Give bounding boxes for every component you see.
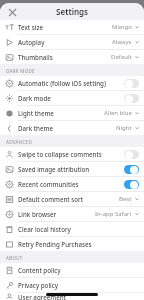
button[interactable]: Dark theme bbox=[0, 121, 144, 135]
staticText: Alien blue bbox=[104, 109, 132, 117]
button[interactable]: Dark mode bbox=[0, 91, 144, 105]
button[interactable]: Privacy policy bbox=[0, 278, 144, 292]
staticText: Mango bbox=[112, 23, 132, 31]
staticText: Swipe to collapse comments bbox=[18, 150, 124, 158]
button[interactable]: Recent communities bbox=[0, 177, 144, 191]
button[interactable]: Light theme bbox=[0, 106, 144, 120]
button[interactable]: Automatic (follow iOS setting) bbox=[0, 76, 144, 90]
staticText: Clear local history bbox=[18, 225, 139, 233]
staticText: DARK MODE bbox=[6, 68, 35, 74]
staticText: Always bbox=[112, 38, 132, 46]
button[interactable]: Swipe to collapse comments bbox=[0, 147, 144, 161]
staticText: ADVANCED bbox=[6, 139, 32, 145]
staticText: Link browser bbox=[18, 210, 95, 218]
button[interactable]: User agreement bbox=[0, 293, 144, 300]
staticText: Saved image attribution bbox=[18, 165, 124, 173]
button[interactable]: Retry Pending Purchases bbox=[0, 237, 144, 251]
button[interactable]: Text size bbox=[0, 20, 144, 34]
button[interactable]: Link browser bbox=[0, 207, 144, 221]
staticText: Best bbox=[119, 195, 132, 203]
button[interactable]: Saved image attribution bbox=[0, 162, 144, 176]
button[interactable]: Close bbox=[5, 5, 19, 19]
staticText: Autoplay bbox=[18, 38, 112, 46]
staticText: Content policy bbox=[18, 266, 139, 274]
staticText: Thumbnails bbox=[18, 53, 111, 61]
button[interactable]: Thumbnails bbox=[0, 50, 144, 64]
staticText: Dark theme bbox=[18, 124, 116, 132]
staticText: Night bbox=[116, 124, 132, 132]
staticText: Recent communities bbox=[18, 180, 124, 188]
button[interactable]: Default comment sort bbox=[0, 192, 144, 206]
staticText: User agreement bbox=[18, 293, 139, 300]
button[interactable]: Toggle off bbox=[124, 94, 139, 103]
staticText: Default comment sort bbox=[18, 195, 119, 203]
button[interactable]: Autoplay bbox=[0, 35, 144, 49]
button[interactable]: Toggle off bbox=[124, 150, 139, 159]
staticText: Text size bbox=[18, 23, 112, 31]
button[interactable]: Clear local history bbox=[0, 222, 144, 236]
staticText: ABOUT bbox=[6, 255, 23, 261]
button[interactable]: Toggle on bbox=[124, 165, 139, 174]
button[interactable]: Toggle off bbox=[124, 79, 139, 88]
button[interactable]: Toggle on bbox=[124, 180, 139, 189]
button[interactable]: Content policy bbox=[0, 263, 144, 277]
staticText: Default bbox=[111, 53, 132, 61]
staticText: Dark mode bbox=[18, 94, 124, 102]
staticText: Privacy policy bbox=[18, 281, 139, 289]
staticText: Automatic (follow iOS setting) bbox=[18, 79, 124, 87]
staticText: Settings bbox=[56, 6, 88, 17]
staticText: Retry Pending Purchases bbox=[18, 240, 139, 248]
staticText: In-app Safari bbox=[95, 210, 132, 218]
staticText: Light theme bbox=[18, 109, 104, 117]
